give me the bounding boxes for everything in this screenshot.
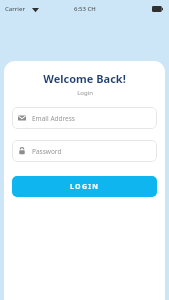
button[interactable]: Email Address xyxy=(12,107,157,129)
button[interactable]: Password xyxy=(12,140,157,162)
staticText: Login xyxy=(77,89,93,97)
button[interactable]: LOGIN xyxy=(12,176,157,197)
staticText: 6:53 CH xyxy=(74,5,96,13)
staticText: Welcome Back! xyxy=(43,71,126,86)
staticText: Carrier xyxy=(5,5,25,13)
staticText: Email Address xyxy=(32,114,75,123)
staticText: LOGIN xyxy=(70,182,100,192)
staticText: Password xyxy=(32,147,62,156)
